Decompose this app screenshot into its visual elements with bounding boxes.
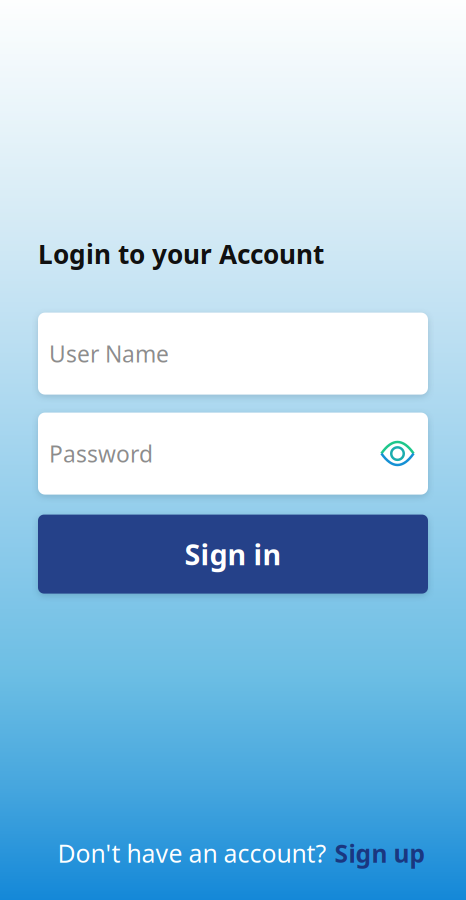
staticText: Don't have an account? <box>57 836 326 870</box>
button[interactable]: User Name <box>38 313 415 395</box>
staticText: Sign in <box>184 535 281 574</box>
staticText: Login to your Account <box>38 236 324 272</box>
button[interactable]: Sign up <box>334 836 425 870</box>
button[interactable]: Sign in <box>38 515 428 594</box>
button[interactable]: Password <box>38 413 380 495</box>
staticText: Password <box>49 438 153 469</box>
staticText: Sign up <box>334 836 425 870</box>
button[interactable]: Show password <box>380 440 415 467</box>
staticText: User Name <box>49 338 169 369</box>
